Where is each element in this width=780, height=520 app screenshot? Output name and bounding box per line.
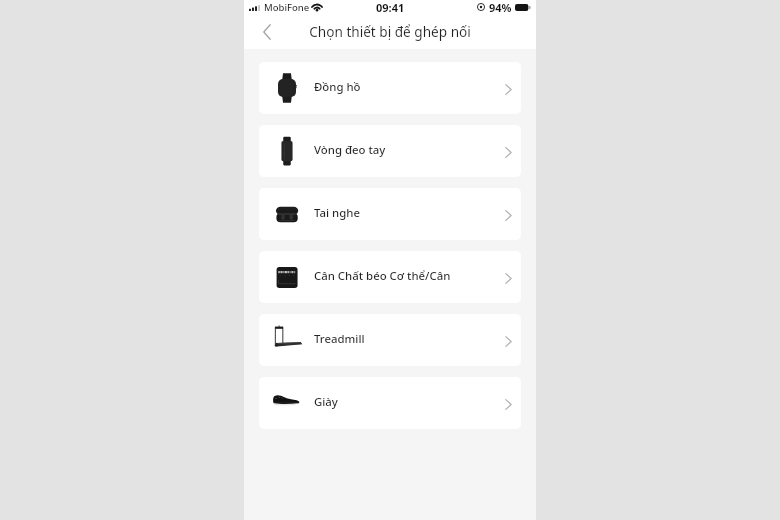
staticText: Vòng đeo tay [314,142,495,158]
button[interactable]: Tai nghe [259,188,521,240]
staticText: Cân Chất béo Cơ thể/Cân [314,268,495,284]
staticText: Treadmill [314,331,495,347]
button[interactable]: Treadmill [259,314,521,366]
staticText: Chọn thiết bị để ghép nối [309,22,471,41]
staticText: MobiFone [264,1,310,14]
staticText: 09:41 [376,0,405,14]
staticText: Tai nghe [314,205,495,221]
button[interactable]: Cân Chất béo Cơ thể/Cân [259,251,521,303]
staticText: Giày [314,394,495,410]
button[interactable]: Giày [259,377,521,429]
staticText: Đồng hồ [314,79,495,95]
button[interactable]: Đồng hồ [259,62,521,114]
button[interactable]: Vòng đeo tay [259,125,521,177]
button[interactable]: Back [255,20,279,44]
staticText: 94% [489,0,512,14]
